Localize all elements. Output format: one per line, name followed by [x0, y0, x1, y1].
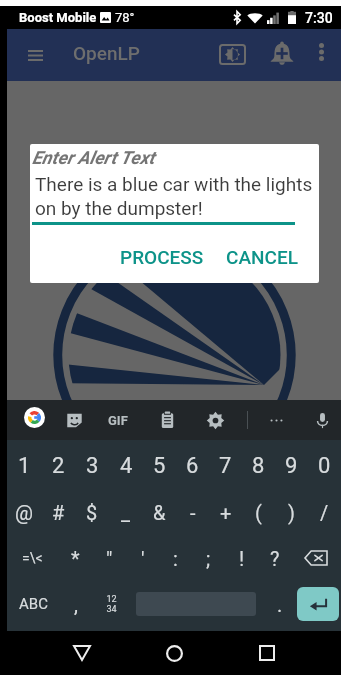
button[interactable]: !	[225, 535, 258, 581]
staticText: -	[190, 501, 196, 524]
staticText: 2	[52, 453, 65, 479]
staticText: #	[52, 501, 65, 524]
button[interactable]: Open navigation drawer	[12, 32, 58, 78]
button[interactable]: Backspace	[291, 535, 341, 581]
button[interactable]: -	[176, 489, 209, 535]
button[interactable]: Enter	[297, 587, 339, 621]
staticText: 5	[153, 453, 166, 479]
staticText: =\<	[22, 550, 43, 566]
staticText: '	[141, 547, 145, 570]
staticText: 6	[186, 453, 199, 479]
staticText: /	[320, 501, 329, 524]
staticText: _	[121, 501, 131, 524]
button[interactable]: )	[275, 489, 308, 535]
button[interactable]: Back	[60, 631, 104, 675]
button[interactable]: Stickers	[58, 404, 90, 436]
staticText: OpenLP	[73, 42, 141, 64]
staticText: ,	[74, 593, 78, 616]
staticText: $	[86, 501, 98, 524]
button[interactable]: Numbers	[95, 581, 127, 627]
staticText: ABC	[19, 595, 48, 613]
staticText: 0	[318, 453, 331, 479]
button[interactable]: +	[209, 489, 242, 535]
button[interactable]: Add alert	[260, 32, 304, 76]
button[interactable]: :	[159, 535, 192, 581]
staticText: 1	[18, 453, 31, 479]
staticText: @	[15, 501, 33, 524]
staticText: 7	[219, 453, 232, 479]
staticText: 7:30	[305, 10, 333, 26]
button[interactable]: ,	[60, 581, 92, 627]
button[interactable]: (	[242, 489, 275, 535]
staticText: 9	[285, 453, 298, 479]
button[interactable]: =\<	[7, 535, 58, 581]
button[interactable]: #	[41, 489, 75, 535]
button[interactable]: Clipboard	[151, 404, 183, 436]
button[interactable]: ABC	[10, 581, 57, 627]
staticText: Boost Mobile	[19, 10, 97, 25]
button[interactable]: CANCEL	[218, 238, 306, 276]
button[interactable]: ;	[192, 535, 225, 581]
button[interactable]: "	[92, 535, 126, 581]
button[interactable]: /	[308, 489, 341, 535]
button[interactable]: &	[143, 489, 176, 535]
button[interactable]: 1	[7, 443, 41, 489]
button[interactable]: @	[7, 489, 41, 535]
button[interactable]: 8	[242, 443, 275, 489]
button[interactable]: 0	[308, 443, 341, 489]
staticText: 12 34	[106, 594, 117, 614]
staticText: 78°	[115, 10, 135, 25]
button[interactable]: _	[109, 489, 143, 535]
staticText: Enter Alert Text	[32, 147, 155, 168]
button[interactable]: 9	[275, 443, 308, 489]
staticText: 4	[120, 453, 133, 479]
staticText: "	[106, 547, 113, 570]
button[interactable]: 7	[209, 443, 242, 489]
button[interactable]: Google	[24, 407, 45, 428]
button[interactable]: *	[58, 535, 92, 581]
staticText: *	[71, 547, 80, 570]
staticText: PROCESS	[120, 246, 204, 268]
staticText: There is a blue car with the lights on b…	[35, 173, 317, 220]
button[interactable]: Recent apps	[245, 631, 289, 675]
button[interactable]: '	[126, 535, 159, 581]
button[interactable]: PROCESS	[112, 238, 212, 276]
button[interactable]: Voice input	[306, 404, 338, 436]
staticText: GIF	[108, 413, 128, 428]
button[interactable]: $	[75, 489, 109, 535]
button[interactable]: 5	[143, 443, 176, 489]
staticText: CANCEL	[226, 246, 298, 268]
staticText: )	[288, 501, 295, 524]
button[interactable]: 6	[176, 443, 209, 489]
staticText: (	[255, 501, 262, 524]
button[interactable]: More options	[301, 32, 341, 72]
button[interactable]: Toggle display	[210, 32, 255, 77]
staticText: .	[277, 593, 283, 616]
button[interactable]: 3	[75, 443, 109, 489]
button[interactable]: 4	[109, 443, 143, 489]
staticText: 3	[86, 453, 99, 479]
staticText: ;	[206, 547, 211, 570]
staticText: :	[173, 547, 178, 570]
staticText: 8	[252, 453, 265, 479]
button[interactable]: .	[265, 581, 295, 627]
button[interactable]: 2	[41, 443, 75, 489]
staticText: +	[220, 501, 232, 524]
button[interactable]: ?	[258, 535, 291, 581]
button[interactable]: Settings	[199, 404, 231, 436]
staticText: ?	[270, 547, 280, 570]
button[interactable]: More	[260, 404, 292, 436]
staticText: &	[153, 501, 166, 524]
staticText: !	[239, 547, 245, 570]
button[interactable]: Home	[152, 631, 196, 675]
